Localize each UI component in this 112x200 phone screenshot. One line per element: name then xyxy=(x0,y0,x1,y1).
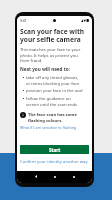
button[interactable]: Confirm your identity another way xyxy=(20,159,89,165)
staticText: Start xyxy=(49,147,61,153)
button[interactable]: Home xyxy=(45,173,64,180)
button[interactable]: What if I am sensitive to flashing colou… xyxy=(20,125,89,130)
staticText: Scan your face with your selfie camera xyxy=(20,27,89,44)
button[interactable]: Recent apps xyxy=(64,173,83,180)
staticText: Next you will need to: xyxy=(20,66,70,72)
button[interactable]: Back xyxy=(26,173,45,180)
staticText: This matches your face to your photo. It… xyxy=(20,47,83,63)
staticText: Confirm your identity another way xyxy=(20,159,88,165)
button[interactable]: Start xyxy=(20,145,89,154)
staticText: position your face in the oval xyxy=(26,88,83,94)
staticText: take off any tinted glasses, or items bl… xyxy=(26,75,83,86)
staticText: The face scan has some flashing colours. xyxy=(28,112,83,123)
staticText: follow the guidance on screen until the … xyxy=(26,96,83,107)
staticText: 9:41 xyxy=(20,18,27,23)
